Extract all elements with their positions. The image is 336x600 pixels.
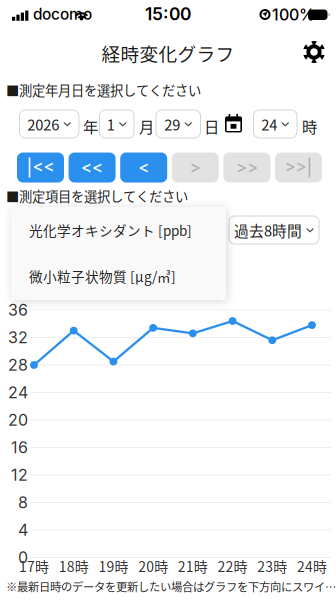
staticText: 20 (8, 410, 28, 430)
staticText: 24 (8, 383, 28, 402)
staticText: 18時 (59, 556, 89, 576)
staticText: 100% (272, 5, 315, 24)
staticText: 時 (302, 115, 317, 137)
staticText: 8 (18, 493, 28, 512)
staticText: 16 (11, 438, 28, 457)
staticText: 15:00 (145, 3, 191, 24)
staticText: 光化学オキシダント [ppb] (29, 220, 192, 240)
button[interactable]: 29 (156, 110, 200, 138)
staticText: 24時 (297, 556, 327, 576)
staticText: < (138, 157, 149, 178)
staticText: ■測定年月日を選択してください (6, 80, 201, 99)
staticText: 19時 (98, 556, 128, 576)
button[interactable]: << (69, 152, 116, 182)
button[interactable]: < (120, 152, 167, 182)
button[interactable]: 微小粒子状物質 [μg/㎥] (11, 253, 226, 299)
staticText: 36 (8, 300, 28, 320)
button[interactable]: Settings (303, 41, 325, 63)
staticText: 0 (18, 548, 28, 567)
button[interactable]: >> (223, 152, 270, 182)
staticText: > (190, 157, 201, 178)
staticText: 24 (261, 113, 277, 135)
staticText: 17時 (19, 556, 49, 576)
staticText: 4 (18, 520, 28, 540)
staticText: 過去8時間 (234, 219, 302, 241)
staticText: 経時変化グラフ (101, 39, 234, 66)
staticText: 年 (83, 115, 98, 137)
button[interactable]: > (172, 152, 219, 182)
button[interactable]: |<< (17, 152, 64, 182)
staticText: 日 (204, 115, 219, 137)
staticText: 21時 (178, 556, 208, 576)
staticText: >> (236, 157, 258, 178)
staticText: |<< (26, 157, 54, 178)
staticText: 32 (8, 328, 28, 347)
button[interactable]: Calendar (225, 114, 242, 133)
button[interactable]: 2026 (19, 110, 79, 138)
button[interactable]: 24 (253, 110, 297, 138)
staticText: 29 (164, 113, 180, 135)
button[interactable]: 過去8時間 (229, 216, 319, 244)
staticText: >>| (284, 157, 312, 178)
staticText: << (81, 157, 103, 178)
staticText: 22時 (218, 556, 248, 576)
button[interactable]: 光化学オキシダント [ppb] (11, 207, 226, 253)
staticText: 28 (8, 355, 28, 375)
staticText: 2026 (27, 113, 59, 135)
staticText: ※最新日時のデータを更新したい場合はグラフを下方向にスワイプしてくだ (6, 578, 336, 594)
staticText: 12 (11, 465, 28, 485)
staticText: 20時 (138, 556, 168, 576)
staticText: 月 (139, 115, 154, 137)
staticText: 微小粒子状物質 [μg/㎥] (29, 266, 176, 286)
staticText: 1 (107, 113, 115, 135)
button[interactable]: 1 (99, 110, 134, 138)
staticText: 23時 (257, 556, 287, 576)
staticText: ■測定項目を選択してください (6, 186, 188, 205)
button[interactable]: >>| (275, 152, 322, 182)
staticText: docomo (33, 5, 92, 24)
